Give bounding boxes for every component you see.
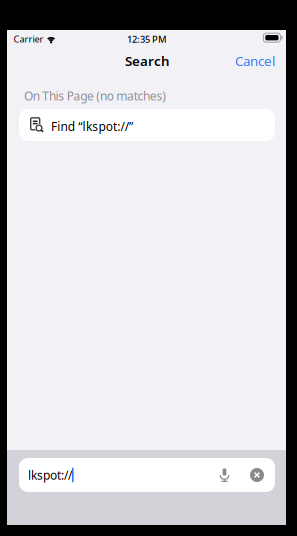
staticText: On This Page (no matches) (24, 88, 166, 104)
staticText: lkspot:// (28, 467, 72, 483)
staticText: Search (125, 52, 170, 70)
button[interactable]: Cancel (231, 48, 279, 74)
button[interactable]: Clear text (247, 463, 267, 487)
staticText: Find “lkspot://” (51, 118, 133, 134)
staticText: Carrier (14, 33, 44, 45)
button[interactable]: Dictate (212, 463, 237, 487)
staticText: 12:35 PM (127, 33, 167, 45)
button[interactable]: Find “lkspot://” (19, 109, 275, 141)
staticText: Cancel (235, 52, 275, 70)
